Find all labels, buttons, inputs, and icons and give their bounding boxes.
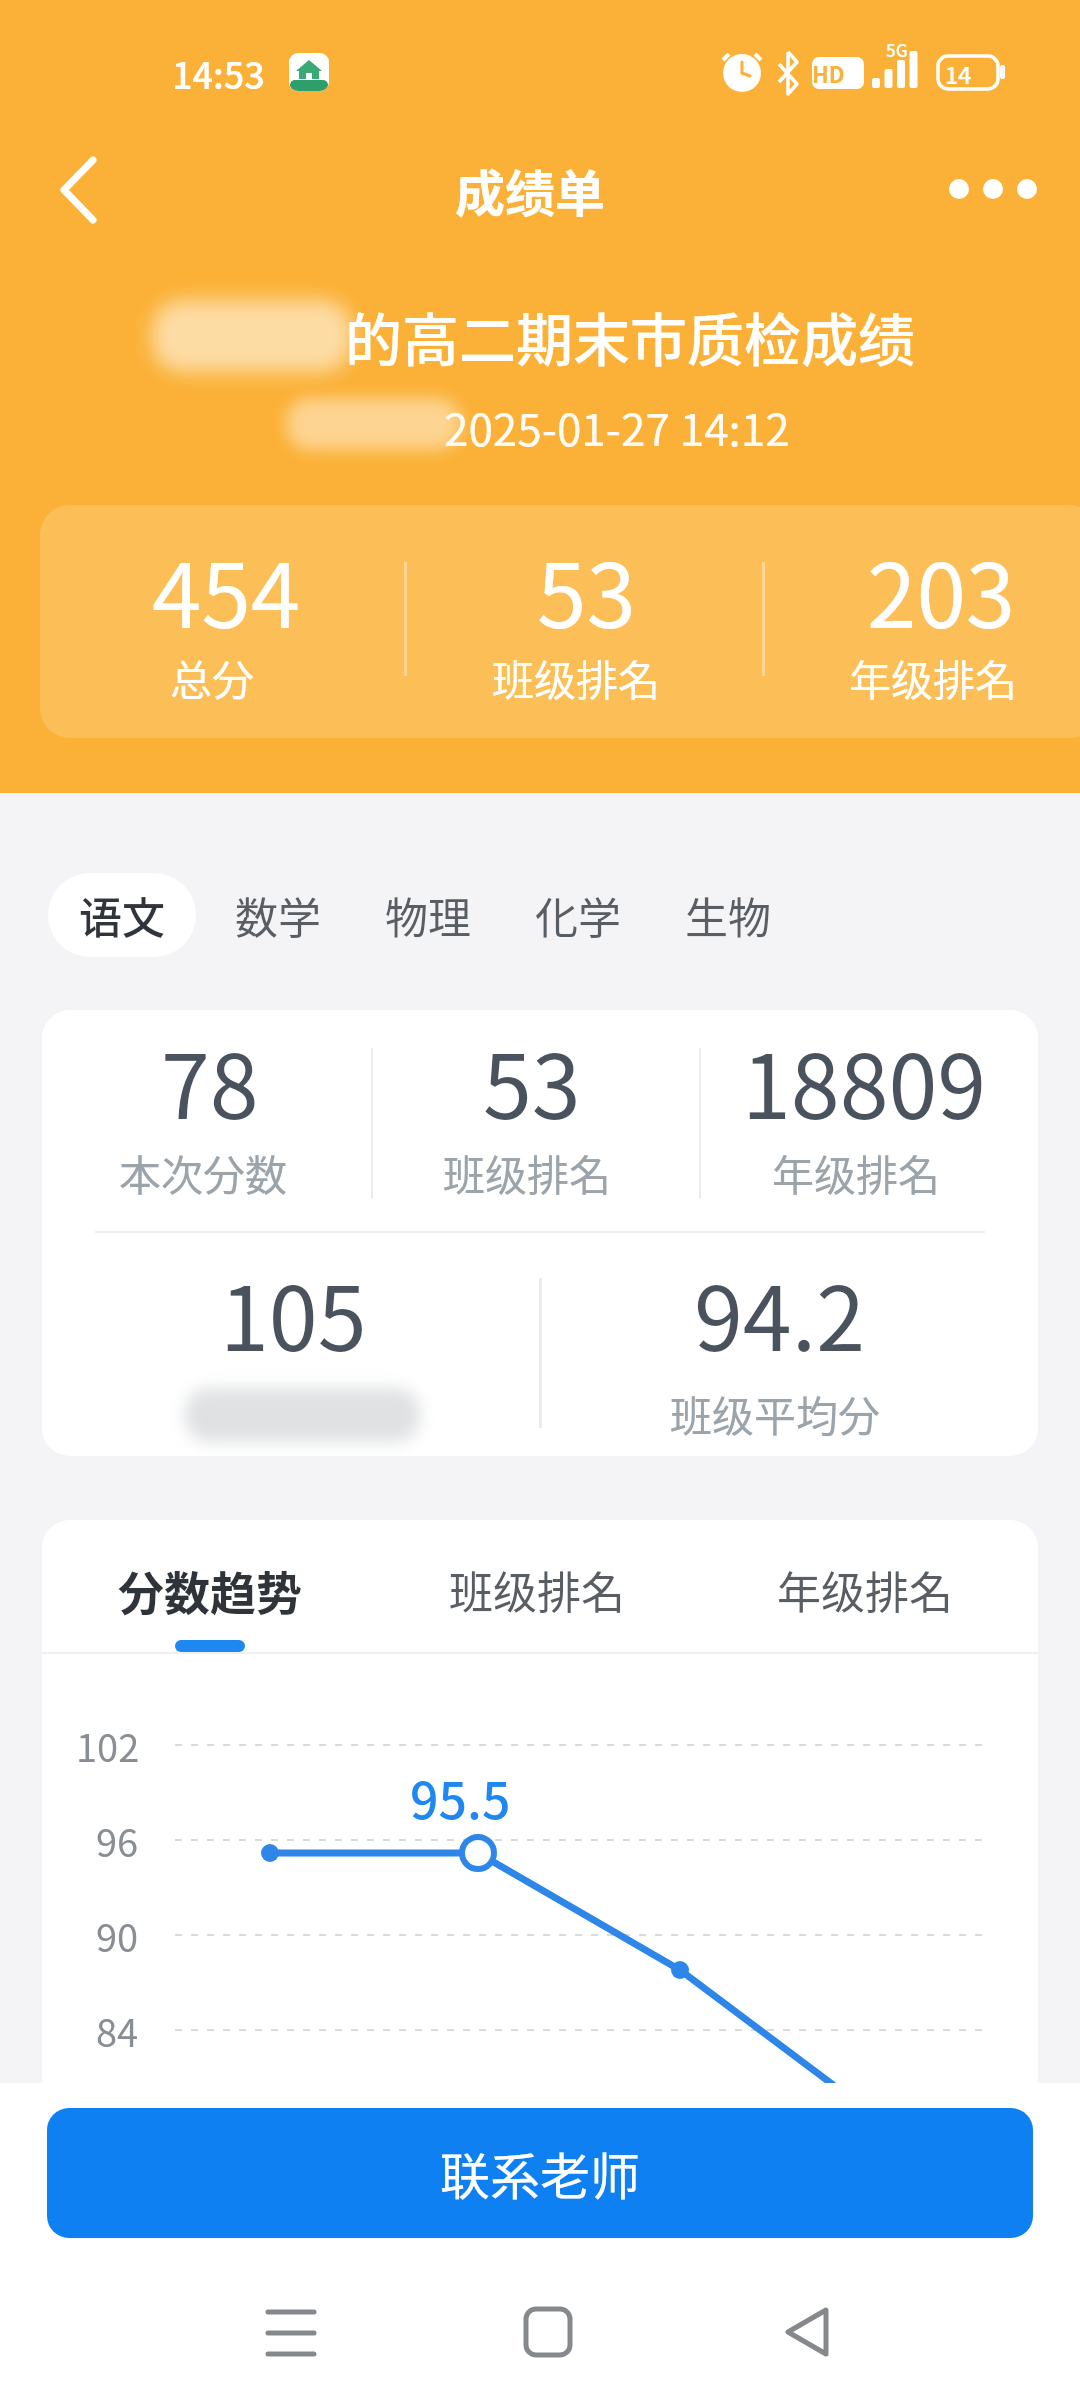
button[interactable]: 数学 xyxy=(203,873,353,957)
staticText: 5G xyxy=(886,37,908,62)
staticText: 14:53 xyxy=(172,47,265,99)
staticText: 84 xyxy=(96,2003,139,2058)
staticText: 成绩单 xyxy=(455,154,605,226)
staticText: 的高二期末市质检成绩 xyxy=(345,295,915,375)
staticText: HD xyxy=(812,57,845,89)
staticText: 102 xyxy=(76,1718,140,1773)
button[interactable]: 年级排名 xyxy=(765,1550,965,1630)
staticText: 96 xyxy=(96,1813,139,1868)
staticText: 78 xyxy=(161,1017,259,1144)
staticText: 班级排名 xyxy=(443,1142,612,1203)
button[interactable]: 语文 xyxy=(48,873,196,957)
button[interactable] xyxy=(255,2296,327,2368)
staticText: 18809 xyxy=(742,1017,987,1144)
staticText: 本次分数 xyxy=(119,1142,288,1203)
staticText: 年级排名 xyxy=(772,1142,941,1203)
button[interactable] xyxy=(512,2296,584,2368)
staticText: 联系老师 xyxy=(440,2137,640,2209)
button[interactable]: 生物 xyxy=(653,873,803,957)
staticText: 总分 xyxy=(170,647,255,708)
staticText: 班级排名 xyxy=(492,647,661,708)
button[interactable]: 班级排名 xyxy=(437,1550,637,1630)
staticText: 年级排名 xyxy=(849,647,1018,708)
button[interactable]: 物理 xyxy=(353,873,503,957)
staticText: 化学 xyxy=(535,884,621,946)
button[interactable] xyxy=(938,158,1048,220)
staticText: 53 xyxy=(537,525,636,654)
staticText: 生物 xyxy=(685,884,771,946)
staticText: 数学 xyxy=(235,884,321,946)
staticText: 203 xyxy=(867,525,1016,654)
staticText: 班级排名 xyxy=(449,1558,625,1622)
staticText: 14 xyxy=(945,57,972,90)
button[interactable]: 分数趋势 xyxy=(110,1550,310,1630)
staticText: 105 xyxy=(220,1249,367,1376)
staticText: 语文 xyxy=(79,884,165,946)
staticText: 2025-01-27 14:12 xyxy=(444,395,790,449)
staticText: 94.2 xyxy=(694,1249,865,1376)
button[interactable] xyxy=(40,160,110,222)
staticText: 95.5 xyxy=(410,1761,511,1833)
staticText: 班级平均分 xyxy=(670,1383,881,1444)
button[interactable]: 化学 xyxy=(503,873,653,957)
staticText: 53 xyxy=(483,1017,581,1144)
staticText: 454 xyxy=(152,525,301,654)
staticText: 物理 xyxy=(385,884,471,946)
button[interactable]: 联系老师 xyxy=(47,2108,1033,2238)
staticText: 分数趋势 xyxy=(118,1557,302,1624)
button[interactable] xyxy=(771,2296,843,2368)
staticText: 90 xyxy=(96,1908,139,1963)
staticText: 年级排名 xyxy=(777,1558,953,1622)
